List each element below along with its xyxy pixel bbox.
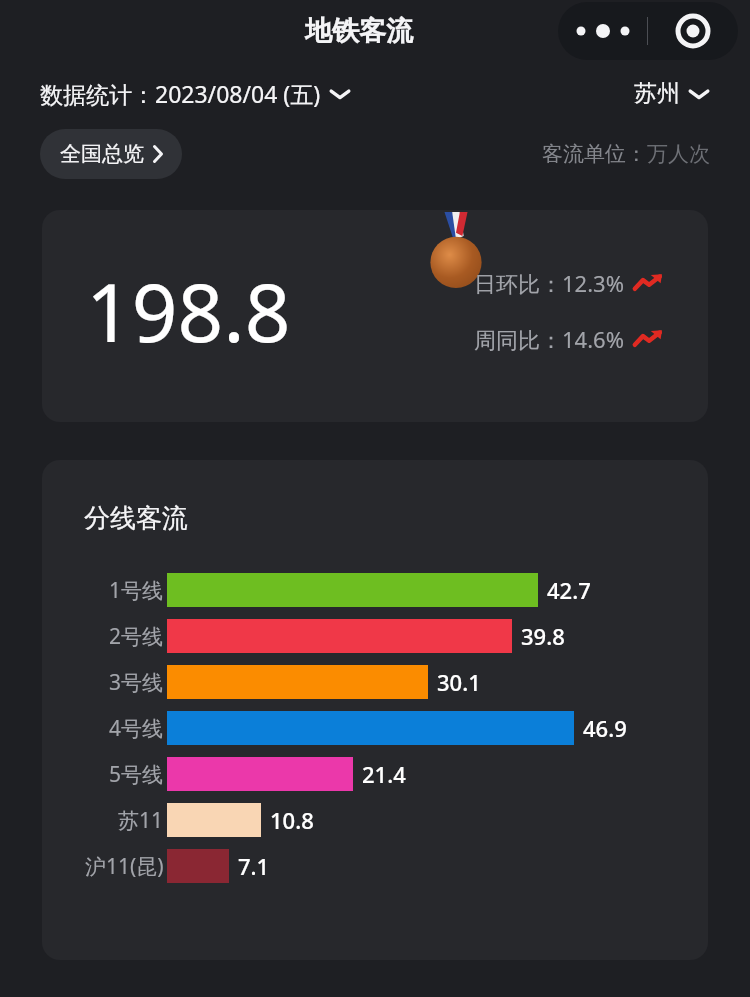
staticText: 万人次 xyxy=(647,141,710,167)
button[interactable]: Close mini program xyxy=(648,2,738,60)
button[interactable]: 苏11 xyxy=(42,797,708,843)
staticText: 苏11 xyxy=(118,806,164,835)
button[interactable]: 198.8 xyxy=(42,210,708,422)
staticText: 数据统计：2023/08/04 (五) xyxy=(40,78,321,109)
staticText: 5号线 xyxy=(109,760,164,789)
staticText: 3号线 xyxy=(109,668,164,697)
staticText: 日环比：12.3% xyxy=(474,268,624,298)
staticText: 1号线 xyxy=(109,576,164,605)
staticText: 地铁客流 xyxy=(305,14,413,48)
staticText: 分线客流 xyxy=(84,502,188,535)
button[interactable]: 全国总览 xyxy=(40,129,182,179)
button[interactable]: 苏州 xyxy=(634,79,710,108)
button[interactable]: 2号线 xyxy=(42,613,708,659)
staticText: 10.8 xyxy=(270,805,314,835)
staticText: 42.7 xyxy=(547,575,591,605)
staticText: 7.1 xyxy=(238,851,270,881)
button[interactable]: More options xyxy=(558,2,647,60)
staticText: 46.9 xyxy=(583,713,627,743)
button[interactable]: 沪11(昆) xyxy=(42,843,708,889)
button[interactable]: 5号线 xyxy=(42,751,708,797)
staticText: 周同比：14.6% xyxy=(474,324,624,354)
staticText: 苏州 xyxy=(634,79,680,108)
staticText: 客流单位： xyxy=(542,141,647,167)
staticText: 2号线 xyxy=(109,622,164,651)
staticText: 沪11(昆) xyxy=(85,852,164,881)
staticText: 198.8 xyxy=(86,256,291,365)
staticText: 全国总览 xyxy=(60,141,144,167)
button[interactable]: 4号线 xyxy=(42,705,708,751)
staticText: 4号线 xyxy=(109,714,164,743)
staticText: 30.1 xyxy=(437,667,481,697)
button[interactable]: 3号线 xyxy=(42,659,708,705)
button[interactable]: 1号线 xyxy=(42,567,708,613)
staticText: 39.8 xyxy=(521,621,565,651)
staticText: 21.4 xyxy=(362,759,406,789)
button[interactable]: 数据统计：2023/08/04 (五) xyxy=(40,78,351,109)
